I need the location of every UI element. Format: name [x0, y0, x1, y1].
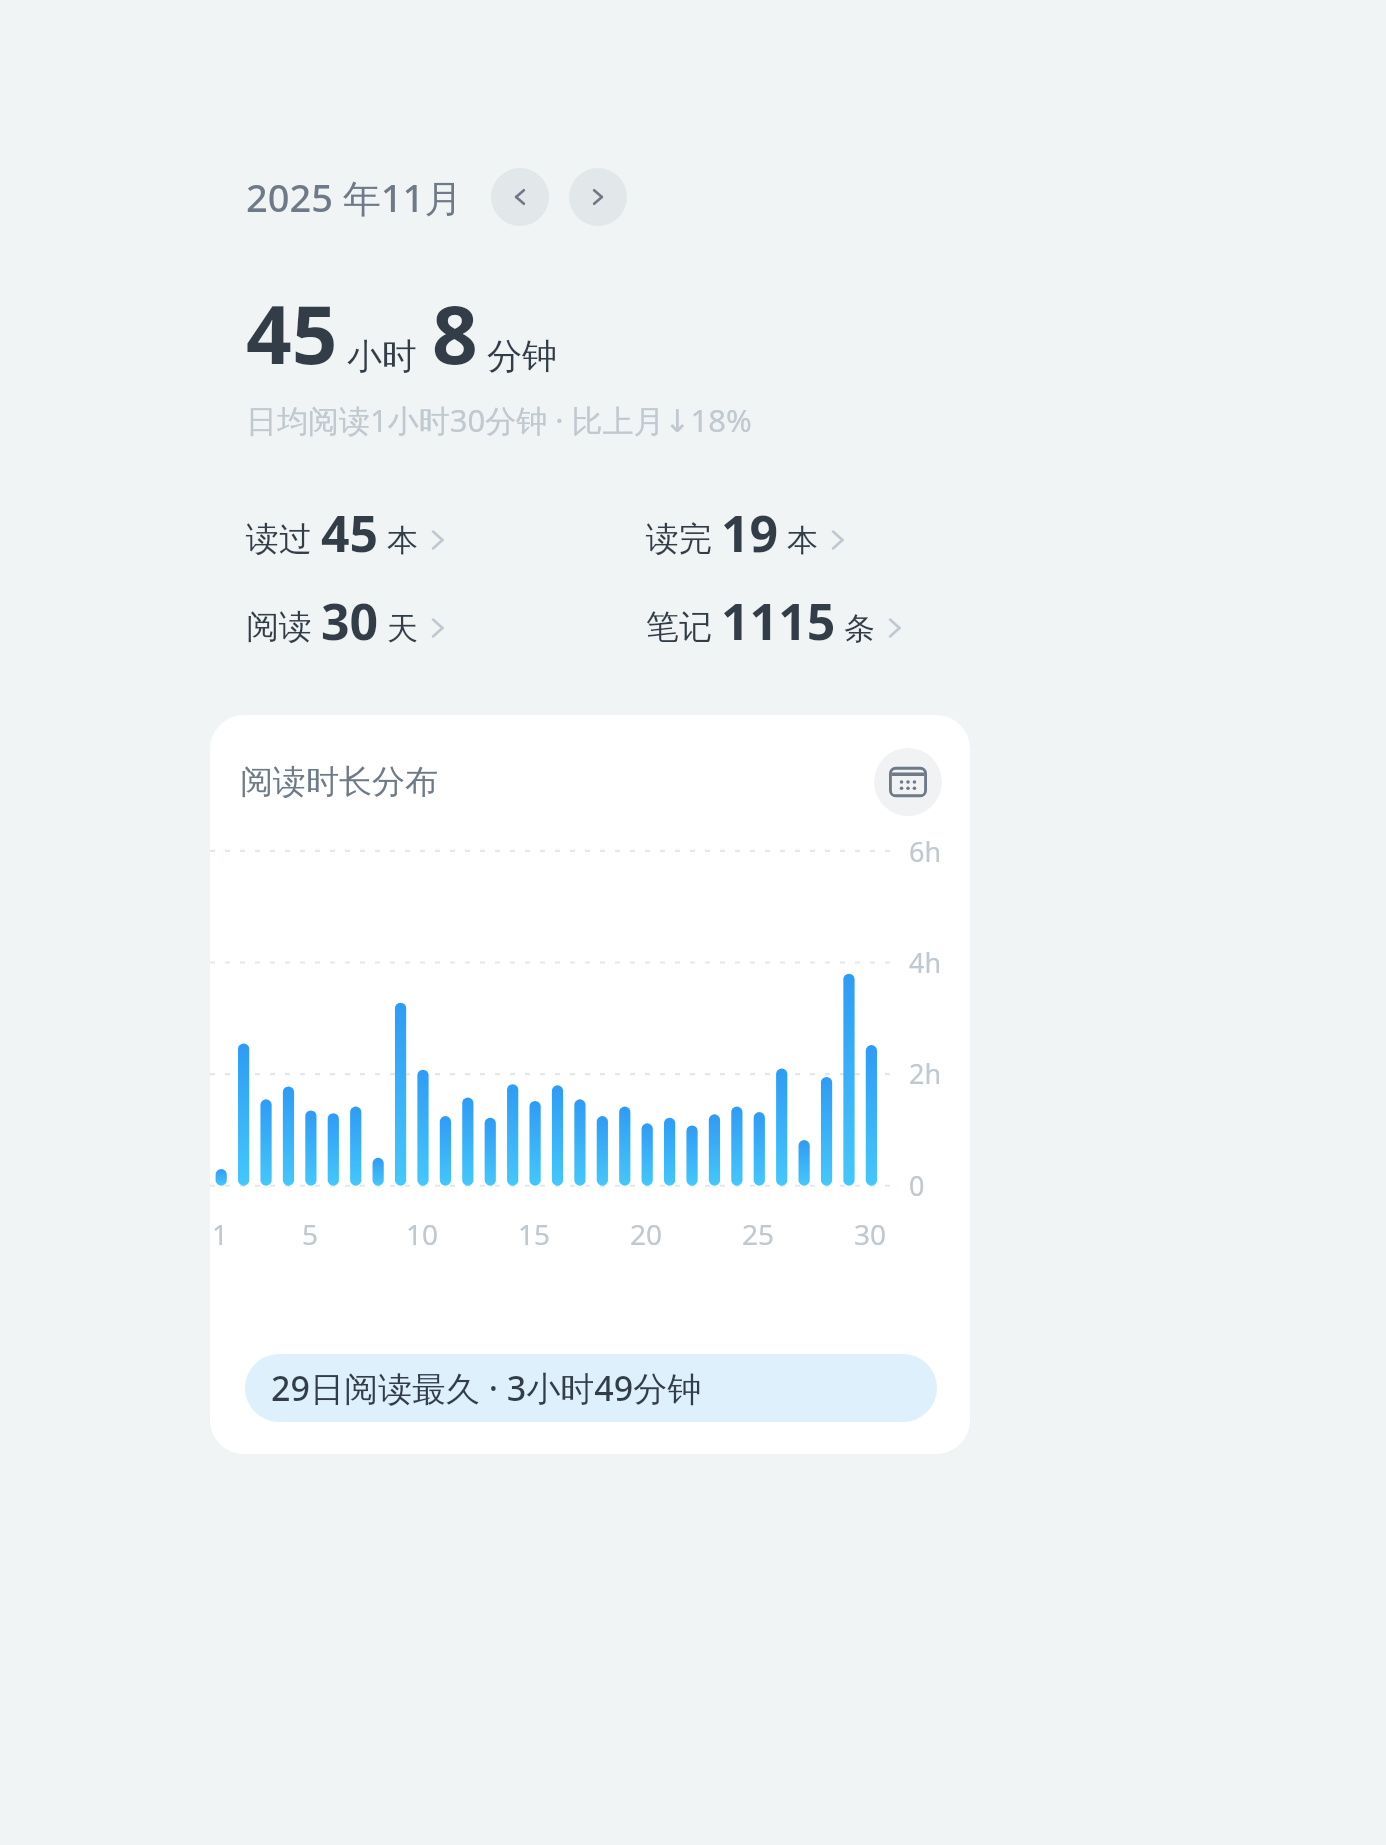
staticText: 本	[787, 521, 818, 560]
staticText: 阅读时长分布	[240, 761, 438, 803]
staticText: 25	[742, 1215, 775, 1253]
staticText: 笔记	[646, 606, 712, 648]
staticText: 日均阅读1小时30分钟 · 比上月↓18%	[246, 399, 752, 441]
staticText: 45	[321, 499, 379, 567]
button[interactable]: Select date	[874, 748, 942, 816]
staticText: 本	[387, 521, 418, 560]
button[interactable]: 29日阅读最久 · 3小时49分钟	[245, 1354, 937, 1422]
staticText: 30	[854, 1215, 887, 1253]
staticText: 读过	[246, 518, 312, 560]
staticText: 4h	[909, 944, 942, 981]
staticText: 5	[302, 1215, 319, 1253]
staticText: 小时	[347, 334, 417, 378]
staticText: 1	[212, 1215, 229, 1253]
staticText: 6h	[909, 833, 942, 870]
button[interactable]: 读过	[246, 499, 446, 567]
staticText: 45	[246, 278, 338, 387]
staticText: 19	[721, 499, 779, 567]
button[interactable]: 笔记	[646, 587, 903, 655]
staticText: 10	[406, 1215, 439, 1253]
staticText: 分钟	[487, 334, 557, 378]
staticText: 20	[630, 1215, 663, 1253]
staticText: 1115	[721, 587, 836, 655]
staticText: 2h	[909, 1055, 942, 1092]
button[interactable]: Previous month	[491, 168, 549, 226]
staticText: 阅读	[246, 606, 312, 648]
button[interactable]: 阅读	[246, 587, 446, 655]
staticText: 30	[321, 587, 379, 655]
staticText: 0	[909, 1167, 925, 1204]
staticText: 读完	[646, 518, 712, 560]
staticText: 8	[432, 278, 478, 387]
staticText: 天	[387, 609, 418, 648]
staticText: 15	[518, 1215, 551, 1253]
button[interactable]: 读完	[646, 499, 846, 567]
button[interactable]: Next month	[569, 168, 627, 226]
staticText: 条	[844, 609, 875, 648]
staticText: 29日阅读最久 · 3小时49分钟	[271, 1365, 702, 1411]
staticText: 2025 年11月	[246, 171, 463, 223]
